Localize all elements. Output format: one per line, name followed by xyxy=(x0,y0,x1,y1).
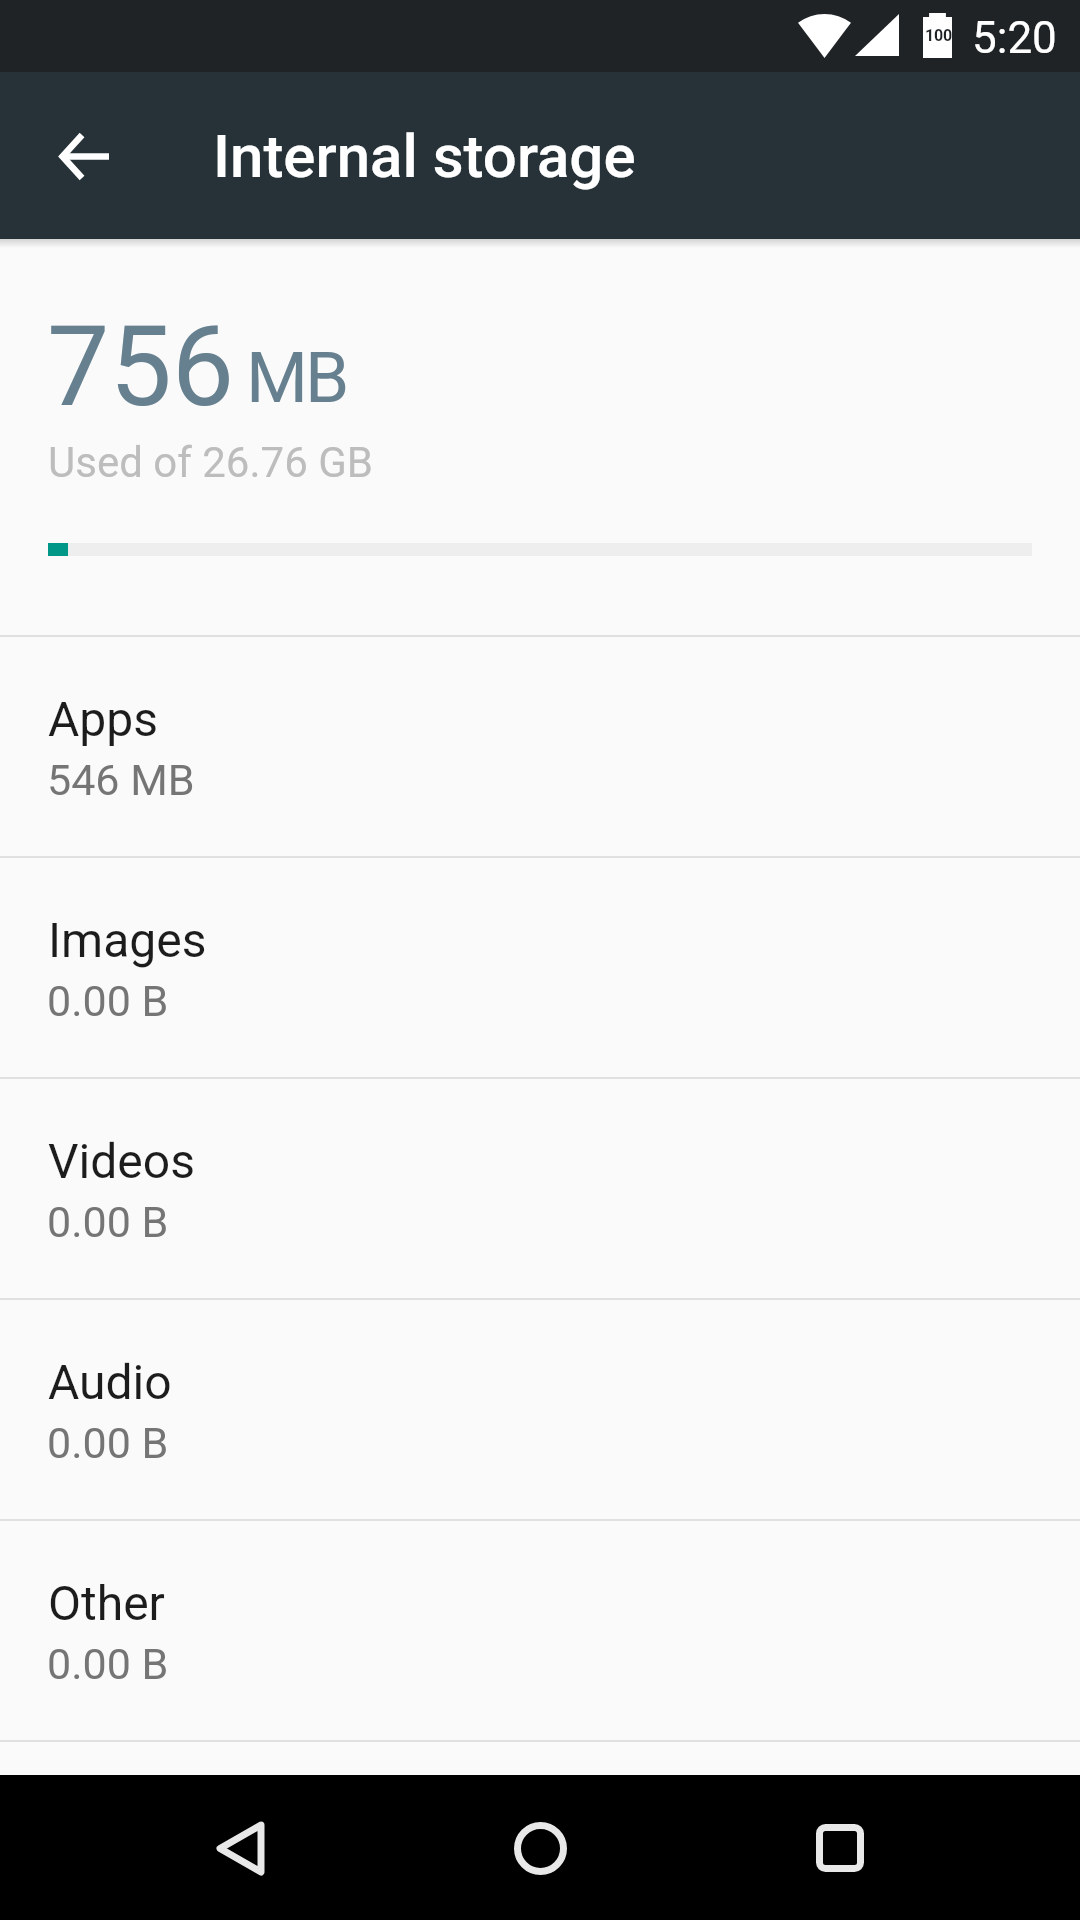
staticText: 0.00 B xyxy=(47,1197,169,1247)
staticText: 0.00 B xyxy=(47,1418,169,1468)
staticText: Internal storage xyxy=(213,121,636,191)
button[interactable]: Home xyxy=(485,1793,595,1903)
staticText: 0.00 B xyxy=(47,1639,169,1689)
staticText: Videos xyxy=(48,1133,195,1189)
staticText: Images xyxy=(48,912,207,968)
staticText: 100 xyxy=(925,26,952,45)
button[interactable]: Recent apps xyxy=(785,1793,895,1903)
staticText: Other xyxy=(48,1575,165,1631)
button[interactable]: Navigate up xyxy=(36,108,132,204)
staticText: Used of 26.76 GB xyxy=(48,438,373,487)
staticText: 0.00 B xyxy=(47,976,169,1026)
staticText: MB xyxy=(246,336,347,419)
button[interactable]: Other xyxy=(0,1521,1080,1740)
staticText: Audio xyxy=(48,1354,172,1410)
button[interactable]: Audio xyxy=(0,1300,1080,1519)
staticText: 546 MB xyxy=(47,755,195,805)
staticText: 756 xyxy=(47,302,235,432)
button[interactable]: Videos xyxy=(0,1079,1080,1298)
button[interactable]: Images xyxy=(0,858,1080,1077)
button[interactable]: Back xyxy=(185,1793,295,1903)
staticText: Apps xyxy=(48,691,158,747)
button[interactable]: Apps xyxy=(0,637,1080,856)
staticText: 5:20 xyxy=(972,12,1057,64)
